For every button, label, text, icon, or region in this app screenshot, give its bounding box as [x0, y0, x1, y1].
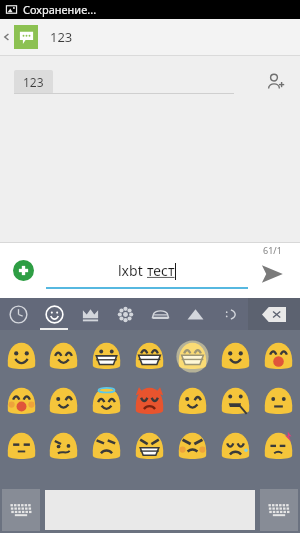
staticText: 123 [50, 28, 73, 46]
button[interactable]: Recent [0, 298, 36, 330]
button[interactable]: Emoji 20 [257, 424, 300, 469]
button[interactable]: Objects [72, 298, 108, 330]
button[interactable]: Emoji 6 [257, 334, 300, 379]
button[interactable]: 123 [14, 70, 53, 94]
button[interactable]: Emoji 5 [214, 334, 257, 379]
staticText: тест [147, 261, 175, 280]
button[interactable]: Back [0, 19, 14, 55]
button[interactable]: Emoji 17 [128, 424, 171, 469]
button[interactable]: Symbols [178, 298, 213, 330]
button[interactable]: Emoji 10 [128, 379, 171, 424]
button[interactable]: Emoji 8 [42, 379, 85, 424]
button[interactable]: Emoji 1 [42, 334, 85, 379]
button[interactable]: Nature [108, 298, 143, 330]
button[interactable]: Keyboard [2, 489, 40, 531]
button[interactable]: Emoji 11 [171, 379, 214, 424]
button[interactable]: Emoji 9 [85, 379, 128, 424]
button[interactable]: Add contact [260, 66, 292, 98]
button[interactable]: Keyboard [260, 489, 298, 531]
button[interactable]: Backspace [248, 298, 300, 330]
button[interactable]: Emoji 13 [257, 379, 300, 424]
button[interactable]: Conversation icon [14, 25, 38, 49]
button[interactable]: Smileys [36, 298, 72, 330]
button[interactable]: Emoji 12 [214, 379, 257, 424]
button[interactable]: Emoticons [213, 298, 248, 330]
button[interactable]: Emoji 3 [128, 334, 171, 379]
staticText: 123 [23, 74, 44, 90]
button[interactable]: Emoji 0 [0, 334, 42, 379]
button[interactable]: Emoji 2 [85, 334, 128, 379]
button[interactable]: Send [255, 257, 289, 291]
staticText: Сохранение... [23, 2, 97, 17]
staticText: 61/1 [263, 244, 282, 256]
button[interactable]: Emoji 15 [42, 424, 85, 469]
staticText: lxbt [118, 261, 147, 280]
button[interactable]: Emoji 16 [85, 424, 128, 469]
button[interactable]: Emoji 14 [0, 424, 42, 469]
button[interactable]: Emoji 7 [0, 379, 42, 424]
button[interactable]: Travel [143, 298, 178, 330]
button[interactable]: Emoji 18 [171, 424, 214, 469]
button[interactable]: Emoji 4 [171, 334, 214, 379]
button[interactable]: Emoji 19 [214, 424, 257, 469]
button[interactable]: Add attachment [6, 253, 40, 287]
